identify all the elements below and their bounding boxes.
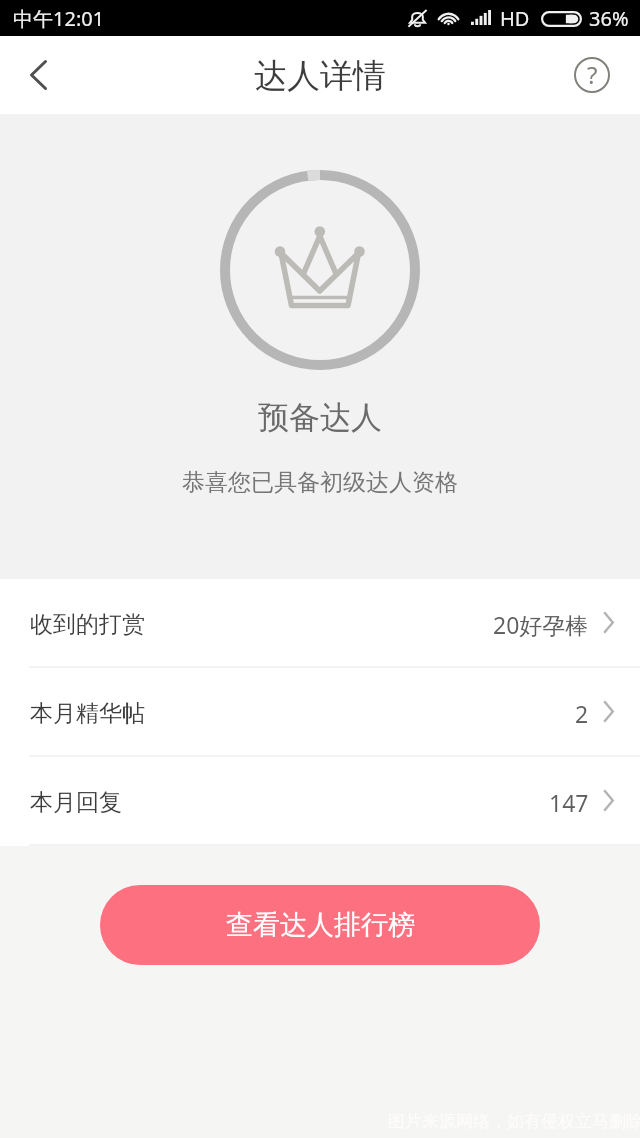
staticText: HD	[500, 5, 530, 32]
staticText: 147	[549, 787, 589, 818]
staticText: 预备达人	[258, 398, 382, 437]
staticText: 收到的打赏	[30, 610, 145, 639]
button[interactable]: Back	[0, 37, 76, 113]
staticText: 20好孕棒	[493, 609, 589, 640]
staticText: 本月精华帖	[30, 699, 145, 728]
button[interactable]: 收到的打赏	[0, 579, 640, 666]
staticText: 图片来源网络，如有侵权立马删除	[388, 1111, 640, 1132]
staticText: 2	[575, 698, 589, 729]
button[interactable]: 查看达人排行榜	[100, 885, 540, 965]
staticText: 查看达人排行榜	[226, 908, 415, 942]
button[interactable]: 本月精华帖	[0, 668, 640, 755]
button[interactable]: 本月回复	[0, 757, 640, 844]
staticText: 36%	[589, 5, 629, 32]
staticText: 中午12:01	[13, 5, 105, 32]
staticText: 本月回复	[30, 788, 122, 817]
button[interactable]: Help	[564, 47, 620, 103]
staticText: 达人详情	[254, 55, 386, 97]
staticText: ?	[587, 58, 598, 91]
staticText: 恭喜您已具备初级达人资格	[182, 468, 458, 497]
